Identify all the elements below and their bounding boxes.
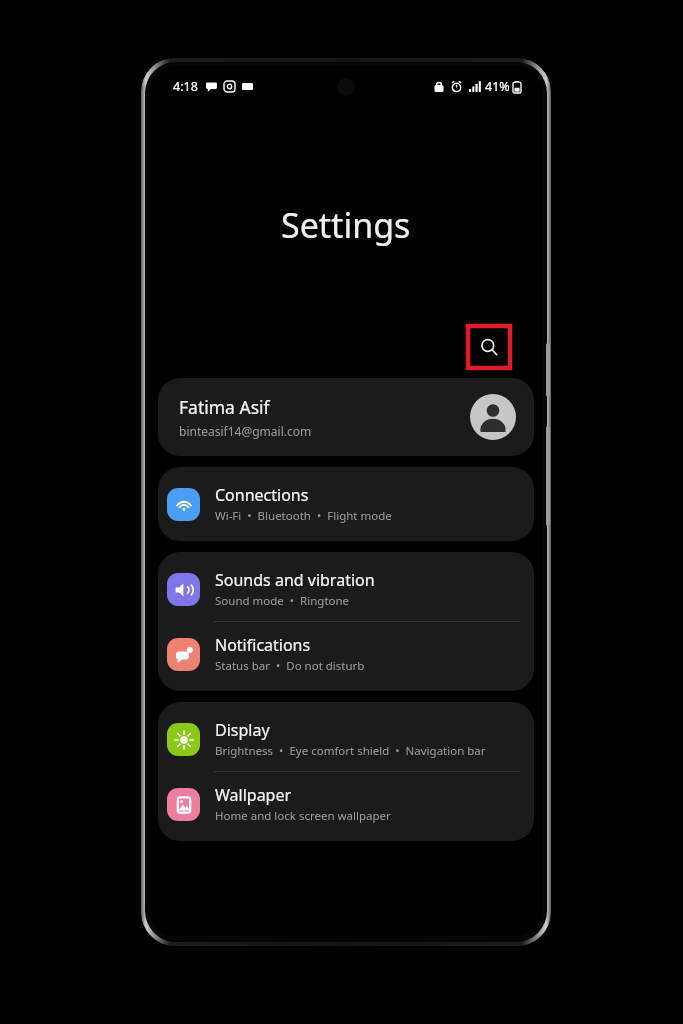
staticText: Connections (215, 484, 309, 506)
button[interactable]: Notifications (158, 622, 534, 686)
button[interactable]: Display (158, 707, 534, 771)
button[interactable]: Wallpaper (158, 772, 534, 836)
button[interactable]: Connections (158, 472, 534, 536)
staticText: 41% (485, 78, 510, 95)
button[interactable]: Sounds and vibration (158, 557, 534, 621)
staticText: 4:18 (173, 78, 198, 95)
staticText: Sound mode • Ringtone (215, 593, 350, 609)
staticText: Home and lock screen wallpaper (215, 808, 391, 824)
staticText: Fatima Asif (179, 395, 270, 419)
staticText: Sounds and vibration (215, 569, 375, 591)
staticText: Notifications (215, 634, 311, 656)
button[interactable]: Fatima Asif (158, 378, 534, 456)
staticText: Wi-Fi • Bluetooth • Flight mode (215, 508, 392, 524)
button[interactable]: Search (466, 324, 512, 370)
staticText: binteasif14@gmail.com (179, 423, 312, 439)
staticText: Status bar • Do not disturb (215, 658, 365, 674)
staticText: Brightness • Eye comfort shield • Naviga… (215, 743, 486, 759)
staticText: Settings (281, 202, 411, 248)
staticText: Display (215, 719, 270, 741)
staticText: Wallpaper (215, 784, 292, 806)
